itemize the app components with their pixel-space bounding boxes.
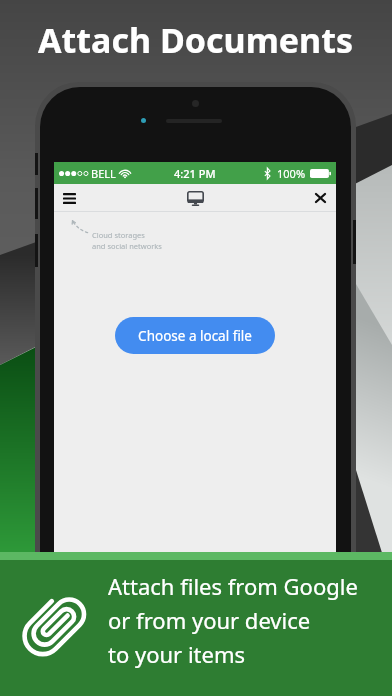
staticText: 100% bbox=[277, 166, 306, 181]
button[interactable]: Menu bbox=[56, 185, 82, 211]
button[interactable]: Desktop view bbox=[182, 185, 208, 211]
staticText: Choose a local file bbox=[138, 327, 252, 345]
staticText: Attach files from Google bbox=[108, 571, 358, 601]
staticText: or from your device bbox=[108, 605, 311, 635]
staticText: BELL bbox=[91, 166, 116, 181]
button[interactable]: Choose a local file bbox=[115, 317, 275, 354]
staticText: Cloud storages bbox=[92, 230, 145, 240]
button[interactable]: Close bbox=[307, 185, 333, 211]
staticText: and social networks bbox=[92, 241, 162, 251]
staticText: Attach Documents bbox=[38, 17, 354, 63]
staticText: to your items bbox=[108, 639, 246, 669]
staticText: 4:21 PM bbox=[174, 166, 216, 181]
